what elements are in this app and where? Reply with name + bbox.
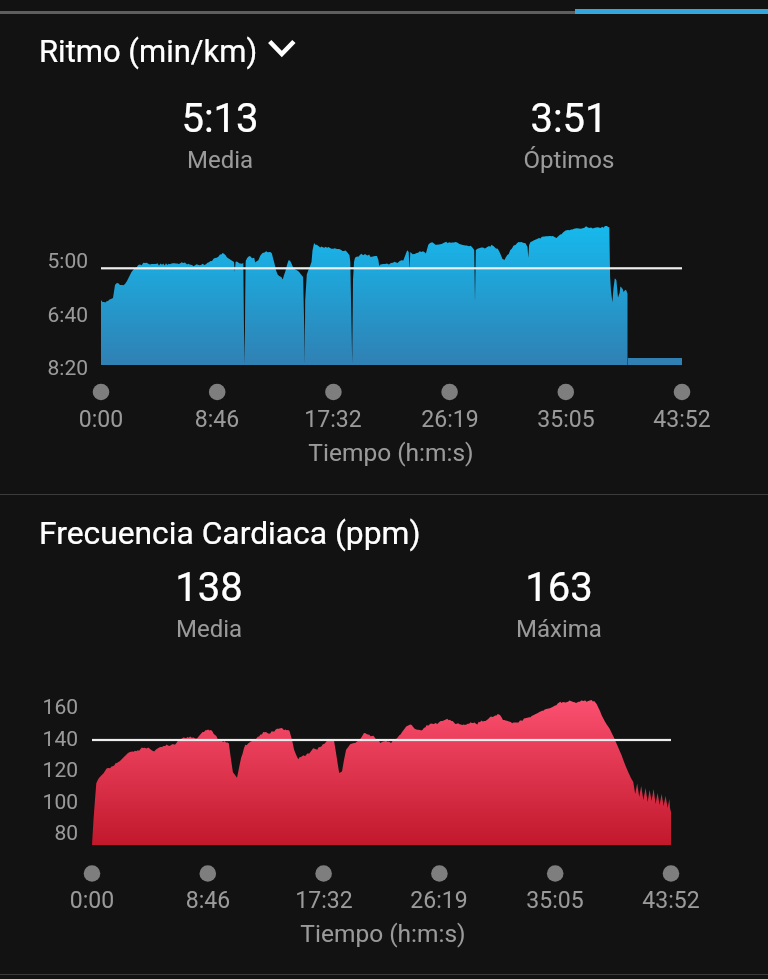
staticText: 3:51 xyxy=(419,95,719,142)
staticText: 6:40 xyxy=(8,303,88,328)
staticText: 0:00 xyxy=(41,406,161,433)
staticText: 140 xyxy=(0,727,78,752)
staticText: 5:13 xyxy=(70,95,370,142)
staticText: 35:05 xyxy=(506,406,626,433)
staticText: 8:46 xyxy=(157,406,277,433)
staticText: 80 xyxy=(0,821,78,846)
staticText: Frecuencia Cardiaca (ppm) xyxy=(39,514,421,551)
staticText: Media xyxy=(70,146,370,174)
staticText: 17:32 xyxy=(273,406,393,433)
other: Expand metric selector xyxy=(267,38,297,64)
button[interactable]: Ritmo (min/km) xyxy=(28,28,309,74)
staticText: 8:46 xyxy=(148,887,268,914)
staticText: 163 xyxy=(409,564,709,611)
staticText: Tiempo (h:m:s) xyxy=(233,919,533,948)
staticText: Ritmo (min/km) xyxy=(39,33,258,69)
staticText: 26:19 xyxy=(390,406,510,433)
staticText: 43:52 xyxy=(611,887,731,914)
button[interactable]: Frecuencia Cardiaca (ppm) xyxy=(28,509,433,556)
staticText: 138 xyxy=(59,564,359,611)
staticText: 160 xyxy=(0,695,78,720)
staticText: 100 xyxy=(0,790,78,815)
staticText: 17:32 xyxy=(264,887,384,914)
staticText: Óptimos xyxy=(419,146,719,174)
staticText: 8:20 xyxy=(8,356,88,381)
staticText: 35:05 xyxy=(495,887,615,914)
staticText: 43:52 xyxy=(622,406,742,433)
staticText: 5:00 xyxy=(8,249,88,274)
staticText: Máxima xyxy=(409,615,709,643)
staticText: Media xyxy=(59,615,359,643)
staticText: 0:00 xyxy=(32,887,152,914)
staticText: Tiempo (h:m:s) xyxy=(241,438,541,467)
staticText: 120 xyxy=(0,758,78,783)
staticText: 26:19 xyxy=(379,887,499,914)
